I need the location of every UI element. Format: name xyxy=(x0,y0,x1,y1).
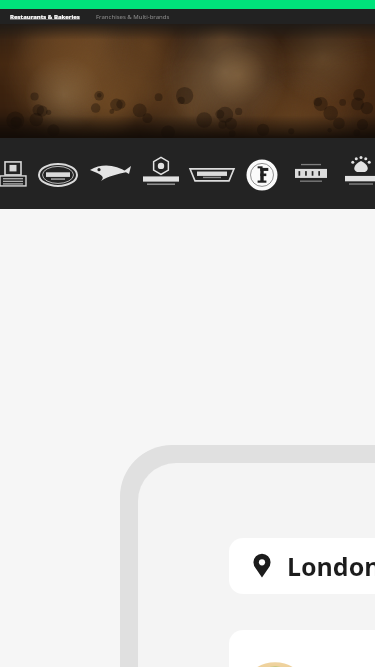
staticText: Restaurants & Bakeries xyxy=(10,13,80,21)
button[interactable]: Restaurants & Bakeries xyxy=(8,12,82,22)
staticText: Franchises & Multi-brands xyxy=(96,13,170,21)
button[interactable]: Location xyxy=(229,538,375,594)
button[interactable]: Franchises & Multi-brands xyxy=(94,12,172,22)
button[interactable] xyxy=(229,630,375,667)
staticText: London xyxy=(287,549,375,583)
other: Location xyxy=(249,553,275,579)
